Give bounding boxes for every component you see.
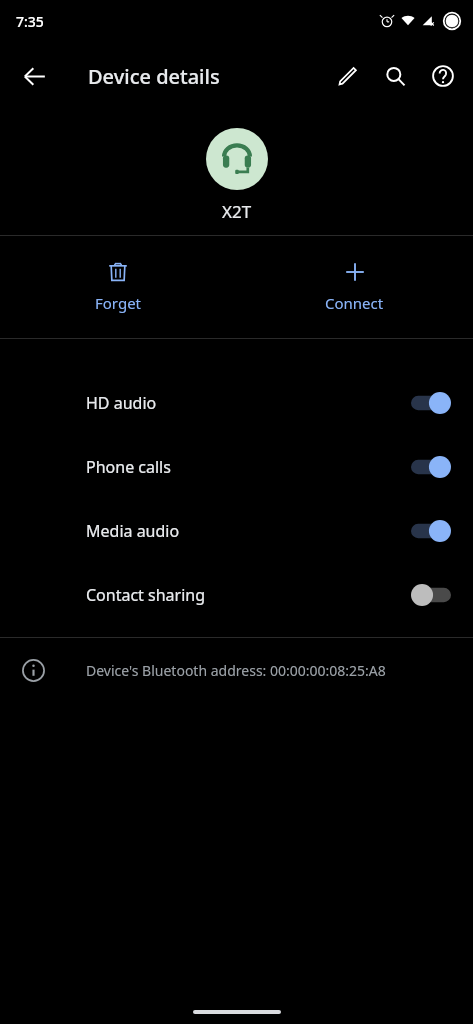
button[interactable]: Search — [371, 52, 419, 100]
staticText: HD audio — [86, 392, 157, 414]
staticText: 7:35 — [16, 12, 44, 31]
staticText: X2T — [222, 200, 252, 223]
staticText: Device details — [88, 63, 220, 90]
button[interactable]: Back — [10, 52, 58, 100]
staticText: Connect — [325, 293, 384, 313]
staticText: Contact sharing — [86, 584, 206, 606]
staticText: Device's Bluetooth address: 00:00:00:08:… — [86, 661, 386, 680]
staticText: Phone calls — [86, 456, 171, 478]
button[interactable]: Contact sharing — [0, 563, 473, 627]
button[interactable]: HD audio — [0, 371, 473, 435]
button[interactable]: Forget — [0, 236, 236, 338]
button[interactable]: Connect — [236, 236, 473, 338]
button[interactable]: Help — [419, 52, 467, 100]
button[interactable]: Media audio — [0, 499, 473, 563]
button[interactable]: Rename — [323, 52, 371, 100]
staticText: Forget — [95, 293, 142, 313]
button[interactable]: Phone calls — [0, 435, 473, 499]
staticText: Media audio — [86, 520, 180, 542]
